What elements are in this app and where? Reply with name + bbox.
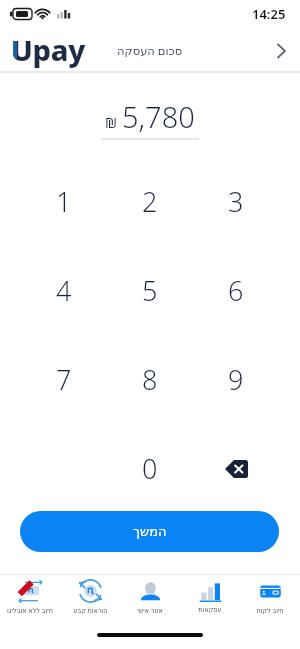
button[interactable]: 0: [107, 424, 193, 513]
staticText: ₪: [105, 112, 117, 132]
staticText: סכום העסקה: [117, 43, 183, 59]
button[interactable]: 6: [193, 246, 279, 335]
button[interactable]: 9: [193, 335, 279, 424]
staticText: Upay: [11, 30, 17, 60]
staticText: 9: [228, 361, 244, 398]
button[interactable]: חיוב לקוח: [240, 575, 300, 621]
staticText: 7: [56, 361, 72, 398]
button[interactable]: Delete: [193, 424, 279, 513]
button[interactable]: הוראות קבע: [60, 575, 120, 621]
button[interactable]: 5: [107, 246, 193, 335]
staticText: אזור אישי: [137, 606, 163, 615]
staticText: 2: [142, 183, 158, 220]
staticText: עסקאות: [198, 606, 222, 614]
button[interactable]: 4: [21, 246, 107, 335]
button[interactable]: אזור אישי: [120, 575, 180, 621]
staticText: Upay: [11, 30, 85, 69]
button[interactable]: Next: [262, 32, 300, 70]
button[interactable]: 2: [107, 157, 193, 246]
button[interactable]: המשך: [20, 511, 279, 552]
button[interactable]: [21, 424, 107, 513]
staticText: 4: [56, 272, 72, 309]
staticText: 8: [142, 361, 158, 398]
staticText: הוראות קבע: [73, 606, 108, 615]
staticText: חיוב ללא אובליגו: [7, 606, 53, 615]
staticText: המשך: [133, 524, 167, 539]
staticText: 3: [228, 183, 244, 220]
button[interactable]: 8: [107, 335, 193, 424]
button[interactable]: חיוב ללא אובליגו: [0, 575, 60, 621]
staticText: 5: [142, 272, 158, 309]
staticText: 0: [142, 450, 158, 487]
staticText: חיוב לקוח: [256, 606, 284, 615]
button[interactable]: עסקאות: [180, 575, 240, 621]
staticText: 1: [56, 183, 72, 220]
staticText: 14:25: [252, 5, 286, 23]
button[interactable]: Delete: [225, 460, 248, 478]
staticText: 6: [228, 272, 244, 309]
button[interactable]: 3: [193, 157, 279, 246]
staticText: 5,780: [122, 97, 195, 136]
button[interactable]: 1: [21, 157, 107, 246]
button[interactable]: 7: [21, 335, 107, 424]
